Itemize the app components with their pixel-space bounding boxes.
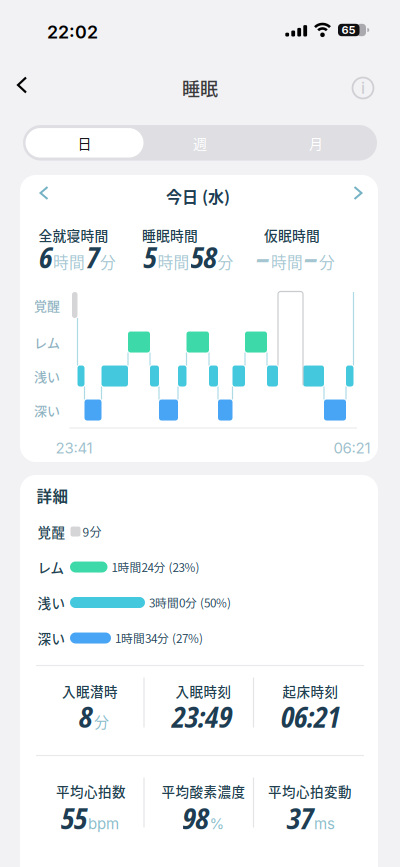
- staticText: 22:02: [47, 21, 98, 43]
- button[interactable]: Info: [351, 76, 375, 100]
- staticText: 睡眠: [182, 75, 218, 101]
- button[interactable]: Previous day: [38, 186, 58, 206]
- staticText: 23:49: [172, 697, 232, 736]
- staticText: 全就寝時間: [38, 225, 108, 245]
- staticText: レム: [34, 333, 60, 351]
- staticText: 月: [309, 133, 323, 153]
- button[interactable]: 週: [141, 125, 259, 161]
- staticText: –: [256, 237, 270, 277]
- staticText: 37: [287, 798, 313, 838]
- staticText: 浅い: [37, 593, 65, 612]
- staticText: 06:21: [333, 439, 370, 457]
- staticText: 分: [319, 250, 335, 273]
- staticText: 1時間24分 (23%): [111, 558, 199, 575]
- staticText: 覚醒: [34, 296, 60, 314]
- staticText: 日: [77, 133, 91, 153]
- staticText: 3時間0分 (50%): [149, 594, 231, 611]
- staticText: 98: [182, 798, 208, 838]
- button[interactable]: 日: [25, 125, 143, 161]
- staticText: 時間: [53, 250, 85, 273]
- staticText: 深い: [37, 628, 65, 648]
- staticText: 8: [79, 697, 92, 736]
- staticText: 分: [217, 250, 233, 273]
- staticText: 分: [100, 250, 116, 273]
- staticText: ms: [314, 815, 335, 833]
- staticText: 浅い: [34, 367, 60, 385]
- staticText: 06:21: [281, 697, 341, 736]
- staticText: 58: [190, 237, 216, 277]
- button[interactable]: 月: [257, 125, 375, 161]
- staticText: レム: [37, 557, 64, 577]
- staticText: 平均心拍数: [56, 781, 126, 801]
- staticText: 平均酸素濃度: [161, 781, 245, 801]
- staticText: bpm: [88, 815, 119, 833]
- staticText: 入眠潜時: [62, 681, 118, 701]
- staticText: 週: [193, 133, 207, 153]
- staticText: 55: [61, 798, 87, 838]
- staticText: 65: [341, 23, 355, 37]
- staticText: 覚醒: [37, 522, 65, 541]
- staticText: 仮眠時間: [264, 225, 320, 245]
- staticText: 9分: [82, 523, 101, 540]
- staticText: 5: [143, 237, 156, 277]
- staticText: 詳細: [37, 484, 69, 507]
- staticText: 睡眠時間: [142, 225, 198, 245]
- staticText: 7: [86, 237, 99, 277]
- staticText: 6: [39, 237, 52, 277]
- staticText: 平均心拍変動: [268, 781, 352, 801]
- staticText: %: [209, 815, 224, 833]
- staticText: 時間: [271, 250, 303, 273]
- button[interactable]: Next day: [352, 186, 372, 206]
- staticText: 1時間34分 (27%): [115, 629, 203, 646]
- staticText: 時間: [157, 250, 189, 273]
- staticText: 分: [94, 710, 109, 732]
- button[interactable]: Back: [16, 76, 40, 100]
- staticText: i: [361, 79, 365, 97]
- staticText: 深い: [34, 401, 60, 419]
- staticText: 入眠時刻: [175, 681, 231, 701]
- staticText: 23:41: [55, 439, 92, 457]
- staticText: 今日 (水): [166, 184, 230, 208]
- staticText: –: [304, 237, 318, 277]
- staticText: 起床時刻: [282, 681, 338, 701]
